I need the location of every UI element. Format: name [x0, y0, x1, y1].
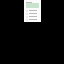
button[interactable] — [24, 9, 41, 12]
button[interactable] — [24, 15, 41, 18]
button[interactable] — [24, 12, 41, 15]
button[interactable] — [24, 18, 41, 21]
button[interactable] — [24, 1, 41, 3]
